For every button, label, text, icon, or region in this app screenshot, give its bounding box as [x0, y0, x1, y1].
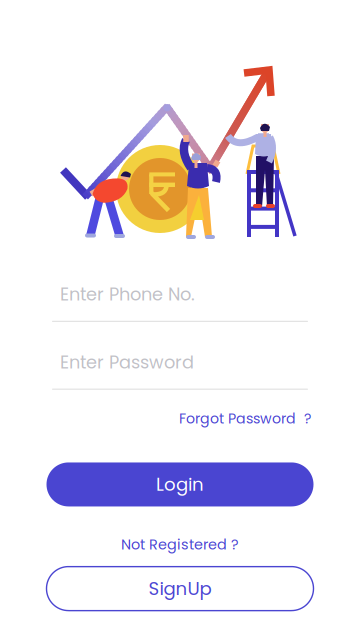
staticText: Not Registered ? [121, 534, 239, 555]
button[interactable]: Enter Phone No. [52, 282, 308, 322]
button[interactable]: Not Registered ? [121, 534, 239, 555]
staticText: Forgot Password ? [179, 409, 311, 428]
staticText: Login [156, 472, 204, 497]
button[interactable]: Forgot Password ? [179, 409, 311, 428]
button[interactable]: Login [46, 462, 313, 506]
staticText: Enter Password [60, 350, 194, 375]
button[interactable]: Enter Password [52, 350, 308, 390]
staticText: Enter Phone No. [60, 282, 195, 307]
staticText: SignUp [148, 576, 211, 601]
button[interactable]: SignUp [46, 567, 313, 611]
